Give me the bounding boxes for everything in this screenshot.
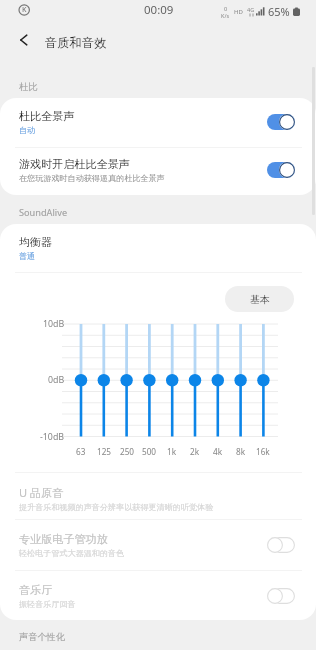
staticText: 普通	[19, 251, 36, 261]
staticText: 2k	[190, 446, 200, 457]
staticText: 4G	[247, 6, 255, 13]
button[interactable]: Switch on	[267, 162, 295, 178]
staticText: K	[22, 5, 27, 15]
staticText: 在您玩游戏时自动获得逼真的杜比全景声	[19, 173, 165, 183]
button[interactable]: U 品原音	[0, 475, 316, 521]
staticText: 均衡器	[19, 235, 53, 249]
staticText: -10dB	[40, 431, 65, 443]
button[interactable]: 均衡器	[0, 224, 316, 272]
button[interactable]: Back	[9, 25, 39, 55]
staticText: 游戏时开启杜比全景声	[19, 157, 130, 171]
staticText: 65%	[268, 4, 290, 19]
staticText: 0	[224, 5, 228, 12]
button[interactable]: 杜比全景声	[0, 98, 316, 145]
staticText: 500	[142, 446, 157, 457]
staticText: 声音个性化	[19, 631, 65, 643]
staticText: 63	[76, 446, 86, 457]
button[interactable]: Switch off	[267, 537, 295, 553]
staticText: K/s	[221, 12, 230, 19]
staticText: 杜比	[19, 81, 38, 93]
staticText: 杜比全景声	[19, 109, 75, 123]
staticText: 8k	[236, 446, 246, 457]
staticText: 基本	[250, 293, 270, 306]
button[interactable]: 音乐厅	[0, 573, 316, 619]
staticText: 振轻音乐厅回音	[19, 599, 76, 609]
staticText: 音乐厅	[19, 583, 53, 597]
button[interactable]: 基本	[225, 286, 294, 312]
staticText: 125	[97, 446, 112, 457]
staticText: 0dB	[48, 374, 65, 386]
button[interactable]: Switch off	[267, 588, 295, 604]
staticText: 1k	[167, 446, 177, 457]
staticText: 4k	[213, 446, 223, 457]
staticText: 音质和音效	[45, 35, 107, 50]
staticText: U 品原音	[19, 485, 64, 500]
staticText: 专业版电子管功放	[19, 532, 108, 546]
staticText: 轻松电子管式大器温和的音色	[19, 548, 125, 558]
staticText: 提升音乐和视频的声音分辨率以获得更清晰的听觉体验	[19, 502, 214, 512]
button[interactable]: Switch on	[267, 114, 295, 130]
button[interactable]: 游戏时开启杜比全景声	[0, 146, 316, 193]
staticText: 250	[120, 446, 135, 457]
staticText: SoundAlive	[19, 206, 68, 219]
button[interactable]: 专业版电子管功放	[0, 522, 316, 568]
staticText: 自动	[19, 125, 36, 135]
staticText: 10dB	[43, 318, 65, 330]
staticText: 16k	[256, 446, 270, 457]
staticText: HD	[234, 8, 243, 16]
staticText: 00:09	[144, 2, 174, 18]
